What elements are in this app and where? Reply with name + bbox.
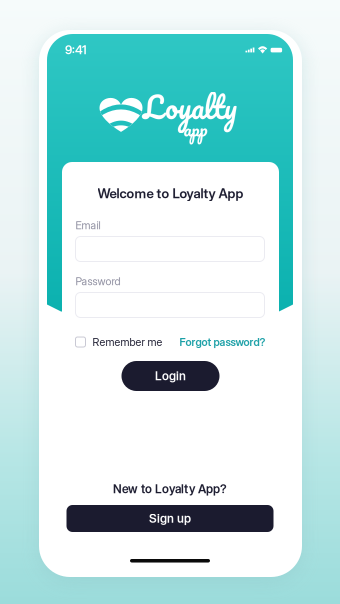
staticText: New to Loyalty App?: [113, 482, 227, 496]
staticText: Forgot password?: [179, 335, 265, 348]
staticText: Password: [75, 275, 120, 288]
button[interactable]: Sign up: [66, 505, 273, 532]
staticText: app: [183, 114, 207, 144]
staticText: Remember me: [92, 335, 162, 348]
staticText: Login: [155, 369, 186, 383]
staticText: Welcome to Loyalty App: [97, 185, 243, 201]
button[interactable]: Login: [121, 361, 219, 391]
button[interactable]: Forgot password?: [175, 336, 265, 348]
staticText: Sign up: [149, 511, 191, 526]
staticText: 9:41: [65, 42, 87, 57]
staticText: Loyalty: [143, 82, 237, 132]
staticText: Email: [75, 219, 100, 232]
button[interactable]: Remember me: [75, 336, 170, 348]
